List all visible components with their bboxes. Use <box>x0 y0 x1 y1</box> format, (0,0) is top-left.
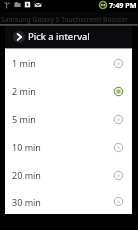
staticText: 5 min <box>12 113 36 125</box>
staticText: 1 min <box>12 57 36 69</box>
staticText: 7:49 PM <box>109 0 137 10</box>
button[interactable]: 30 min <box>5 189 132 214</box>
button[interactable]: Pick a interval <box>5 26 132 48</box>
staticText: Samsung Galaxy S Touchscreen Booster <box>1 15 129 24</box>
button[interactable]: 1 min <box>5 49 132 77</box>
button[interactable]: 2 min <box>5 77 132 105</box>
staticText: 30 min <box>12 196 41 208</box>
button[interactable]: 5 min <box>5 105 132 133</box>
staticText: 20 min <box>12 169 41 181</box>
button[interactable]: 20 min <box>5 161 132 189</box>
staticText: 10 min <box>12 141 41 153</box>
button[interactable]: 10 min <box>5 133 132 161</box>
staticText: Pick a interval <box>28 30 90 43</box>
staticText: 2 min <box>12 85 36 97</box>
